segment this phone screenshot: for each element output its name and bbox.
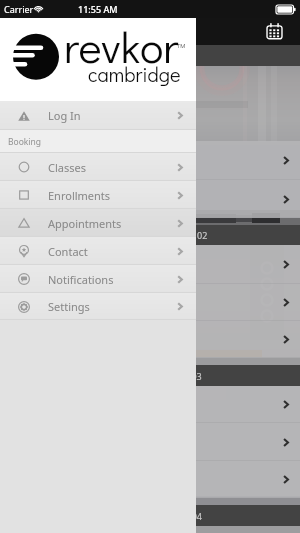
staticText: Appointments — [48, 216, 122, 231]
staticText: TM — [177, 42, 186, 50]
staticText: Sunday, January 01 — [110, 50, 191, 62]
button[interactable]: Enrollments — [0, 181, 196, 209]
staticText: Wednesday, January 04 — [104, 510, 202, 522]
button[interactable] — [0, 245, 300, 284]
button[interactable]: Contact — [0, 237, 196, 265]
staticText: Log In — [48, 108, 81, 123]
staticText: Tuesday, January 03 — [118, 370, 202, 382]
staticText: revkor — [64, 17, 179, 75]
button[interactable]: Log In — [0, 101, 196, 130]
staticText: Settings — [48, 299, 90, 314]
button[interactable] — [0, 180, 300, 218]
staticText: Classes — [48, 160, 86, 175]
staticText: Monday, January 02 — [124, 229, 208, 241]
button[interactable]: Appointments — [0, 209, 196, 237]
button[interactable]: Settings — [0, 293, 196, 320]
button[interactable] — [0, 423, 300, 461]
staticText: cambridge — [88, 61, 181, 87]
button[interactable]: Classes — [0, 153, 196, 181]
button[interactable]: Notifications — [0, 265, 196, 293]
staticText: Carrier — [4, 3, 34, 15]
staticText: 11:55 AM — [78, 3, 118, 15]
staticText: Enrollments — [48, 188, 111, 203]
staticText: Booking — [8, 136, 42, 148]
button[interactable] — [0, 284, 300, 321]
staticText: Contact — [48, 244, 88, 259]
button[interactable] — [0, 321, 300, 358]
button[interactable]: Calendar — [266, 23, 283, 40]
button[interactable] — [0, 386, 300, 423]
button[interactable] — [0, 141, 300, 180]
button[interactable] — [0, 461, 300, 498]
staticText: Notifications — [48, 272, 114, 287]
